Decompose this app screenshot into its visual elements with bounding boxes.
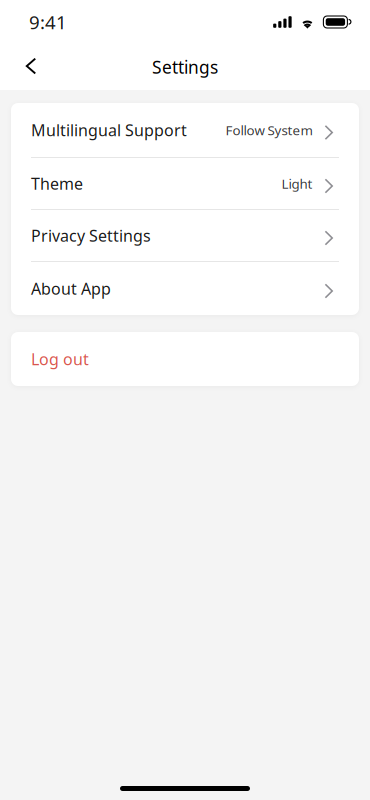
staticText: Multilingual Support — [31, 119, 187, 141]
staticText: Privacy Settings — [31, 225, 151, 246]
staticText: Light — [282, 175, 313, 192]
button[interactable]: Privacy Settings — [11, 210, 359, 261]
staticText: Follow System — [226, 121, 313, 139]
button[interactable]: Back — [10, 46, 52, 88]
button[interactable]: About App — [11, 262, 359, 315]
button[interactable]: Multilingual Support — [11, 103, 359, 157]
staticText: Settings — [152, 55, 218, 78]
button[interactable]: Log out — [11, 332, 359, 386]
staticText: About App — [31, 278, 111, 299]
staticText: Log out — [31, 348, 89, 370]
staticText: 9:41 — [29, 10, 67, 34]
staticText: Theme — [31, 173, 83, 194]
button[interactable]: Theme — [11, 158, 359, 209]
